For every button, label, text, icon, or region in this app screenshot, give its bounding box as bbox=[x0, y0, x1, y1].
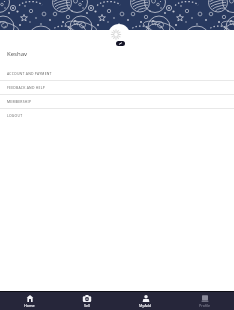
button[interactable]: Profile photo bbox=[108, 24, 130, 46]
staticText: Sell bbox=[84, 303, 91, 308]
staticText: FEEDBACK AND HELP bbox=[7, 85, 46, 90]
staticText: Profile bbox=[199, 303, 211, 308]
staticText: MEMBERSHIP bbox=[7, 99, 32, 104]
button[interactable]: Sell bbox=[58, 292, 116, 310]
staticText: MyAdd bbox=[139, 303, 152, 308]
staticText: Home bbox=[24, 303, 35, 308]
staticText: LOGOUT bbox=[7, 113, 23, 118]
button[interactable]: Home bbox=[0, 292, 58, 310]
button[interactable]: LOGOUT bbox=[0, 109, 234, 123]
button[interactable]: ACCOUNT AND PAYMENT bbox=[0, 67, 234, 81]
staticText: ACCOUNT AND PAYMENT bbox=[7, 71, 52, 76]
staticText: Keshav bbox=[7, 50, 28, 58]
button[interactable]: MEMBERSHIP bbox=[0, 95, 234, 109]
button[interactable]: FEEDBACK AND HELP bbox=[0, 81, 234, 95]
button[interactable]: Profile bbox=[175, 292, 234, 310]
button[interactable]: Edit profile photo bbox=[116, 41, 125, 46]
button[interactable]: MyAdd bbox=[116, 292, 175, 310]
